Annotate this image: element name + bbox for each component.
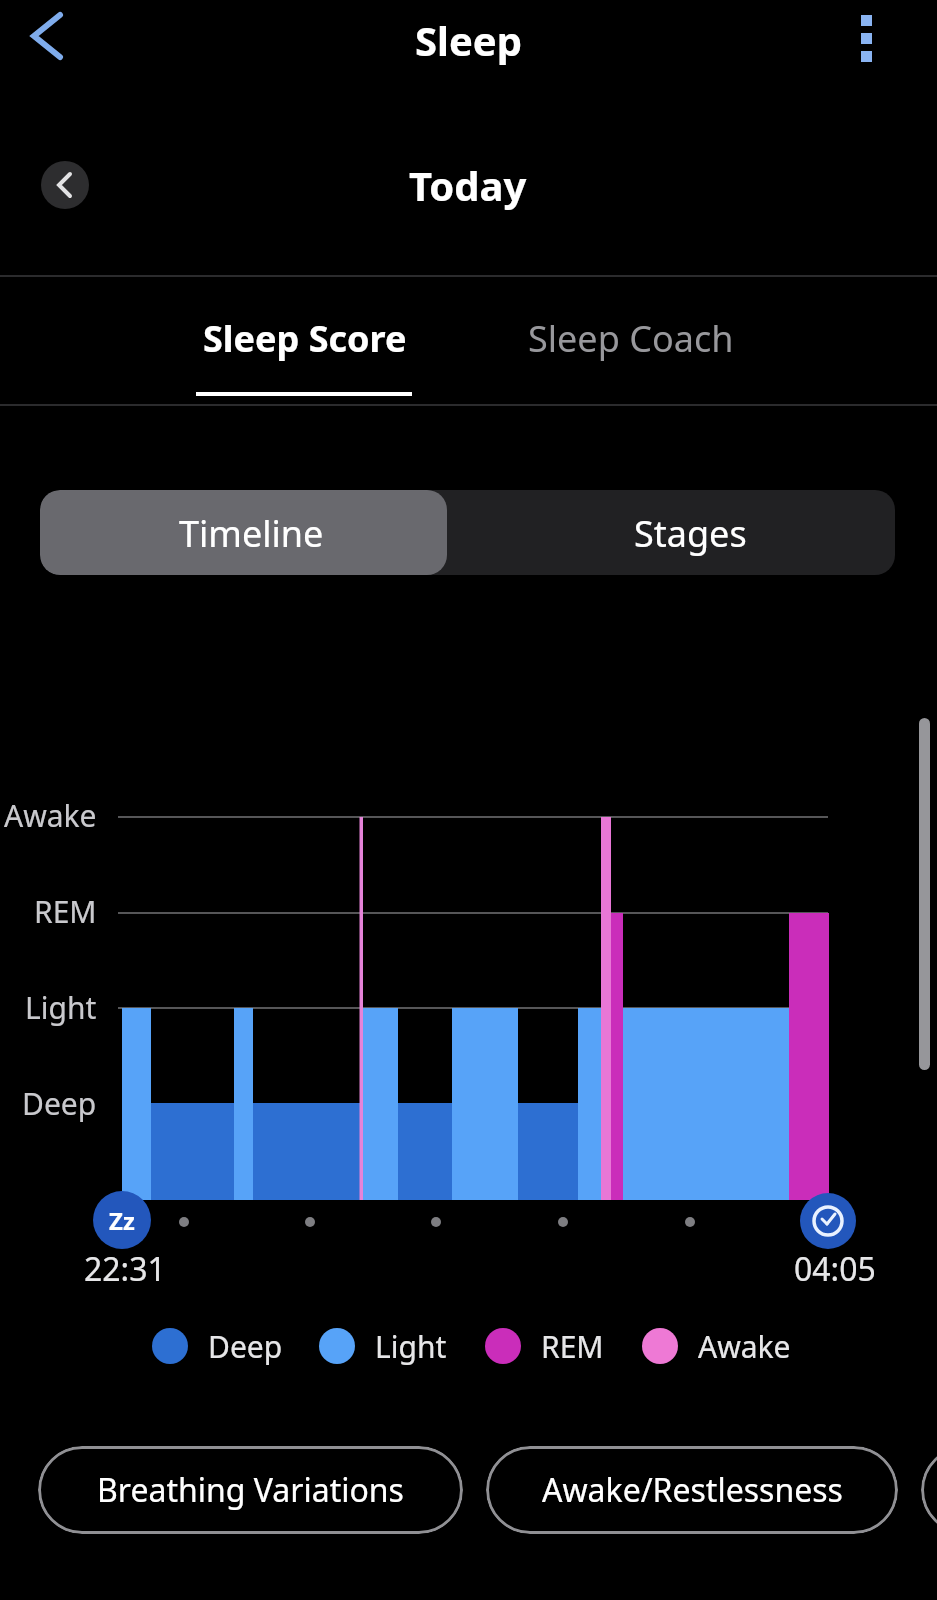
staticText: Awake bbox=[4, 795, 97, 836]
button[interactable] bbox=[40, 490, 447, 575]
staticText: Light bbox=[375, 1326, 447, 1367]
staticText: Zz bbox=[109, 1204, 135, 1237]
staticText: Deep bbox=[208, 1326, 283, 1367]
staticText: Today bbox=[409, 158, 527, 212]
staticText: Light bbox=[25, 987, 97, 1028]
staticText: Deep bbox=[22, 1083, 97, 1124]
staticText: Sleep Score bbox=[203, 314, 407, 363]
button[interactable] bbox=[41, 161, 89, 209]
staticText: REM bbox=[541, 1326, 604, 1367]
staticText: Stages bbox=[634, 509, 747, 558]
button[interactable] bbox=[20, 8, 76, 68]
staticText: Breathing Variations bbox=[97, 1468, 404, 1512]
button[interactable] bbox=[921, 1446, 937, 1534]
button[interactable] bbox=[845, 5, 889, 71]
button[interactable]: Sleep Score bbox=[198, 310, 412, 366]
staticText: Awake/Restlessness bbox=[542, 1468, 843, 1512]
button[interactable]: Awake/Restlessness bbox=[486, 1446, 898, 1534]
staticText: Sleep Coach bbox=[528, 314, 734, 363]
button[interactable]: Sleep Coach bbox=[522, 310, 740, 366]
staticText: REM bbox=[34, 891, 97, 932]
staticText: 22:31 bbox=[84, 1247, 166, 1291]
button[interactable]: Breathing Variations bbox=[38, 1446, 463, 1534]
staticText: 04:05 bbox=[794, 1247, 876, 1291]
staticText: Awake bbox=[698, 1326, 791, 1367]
button[interactable] bbox=[447, 490, 895, 575]
staticText: Sleep bbox=[415, 13, 522, 67]
staticText: Timeline bbox=[179, 509, 324, 558]
